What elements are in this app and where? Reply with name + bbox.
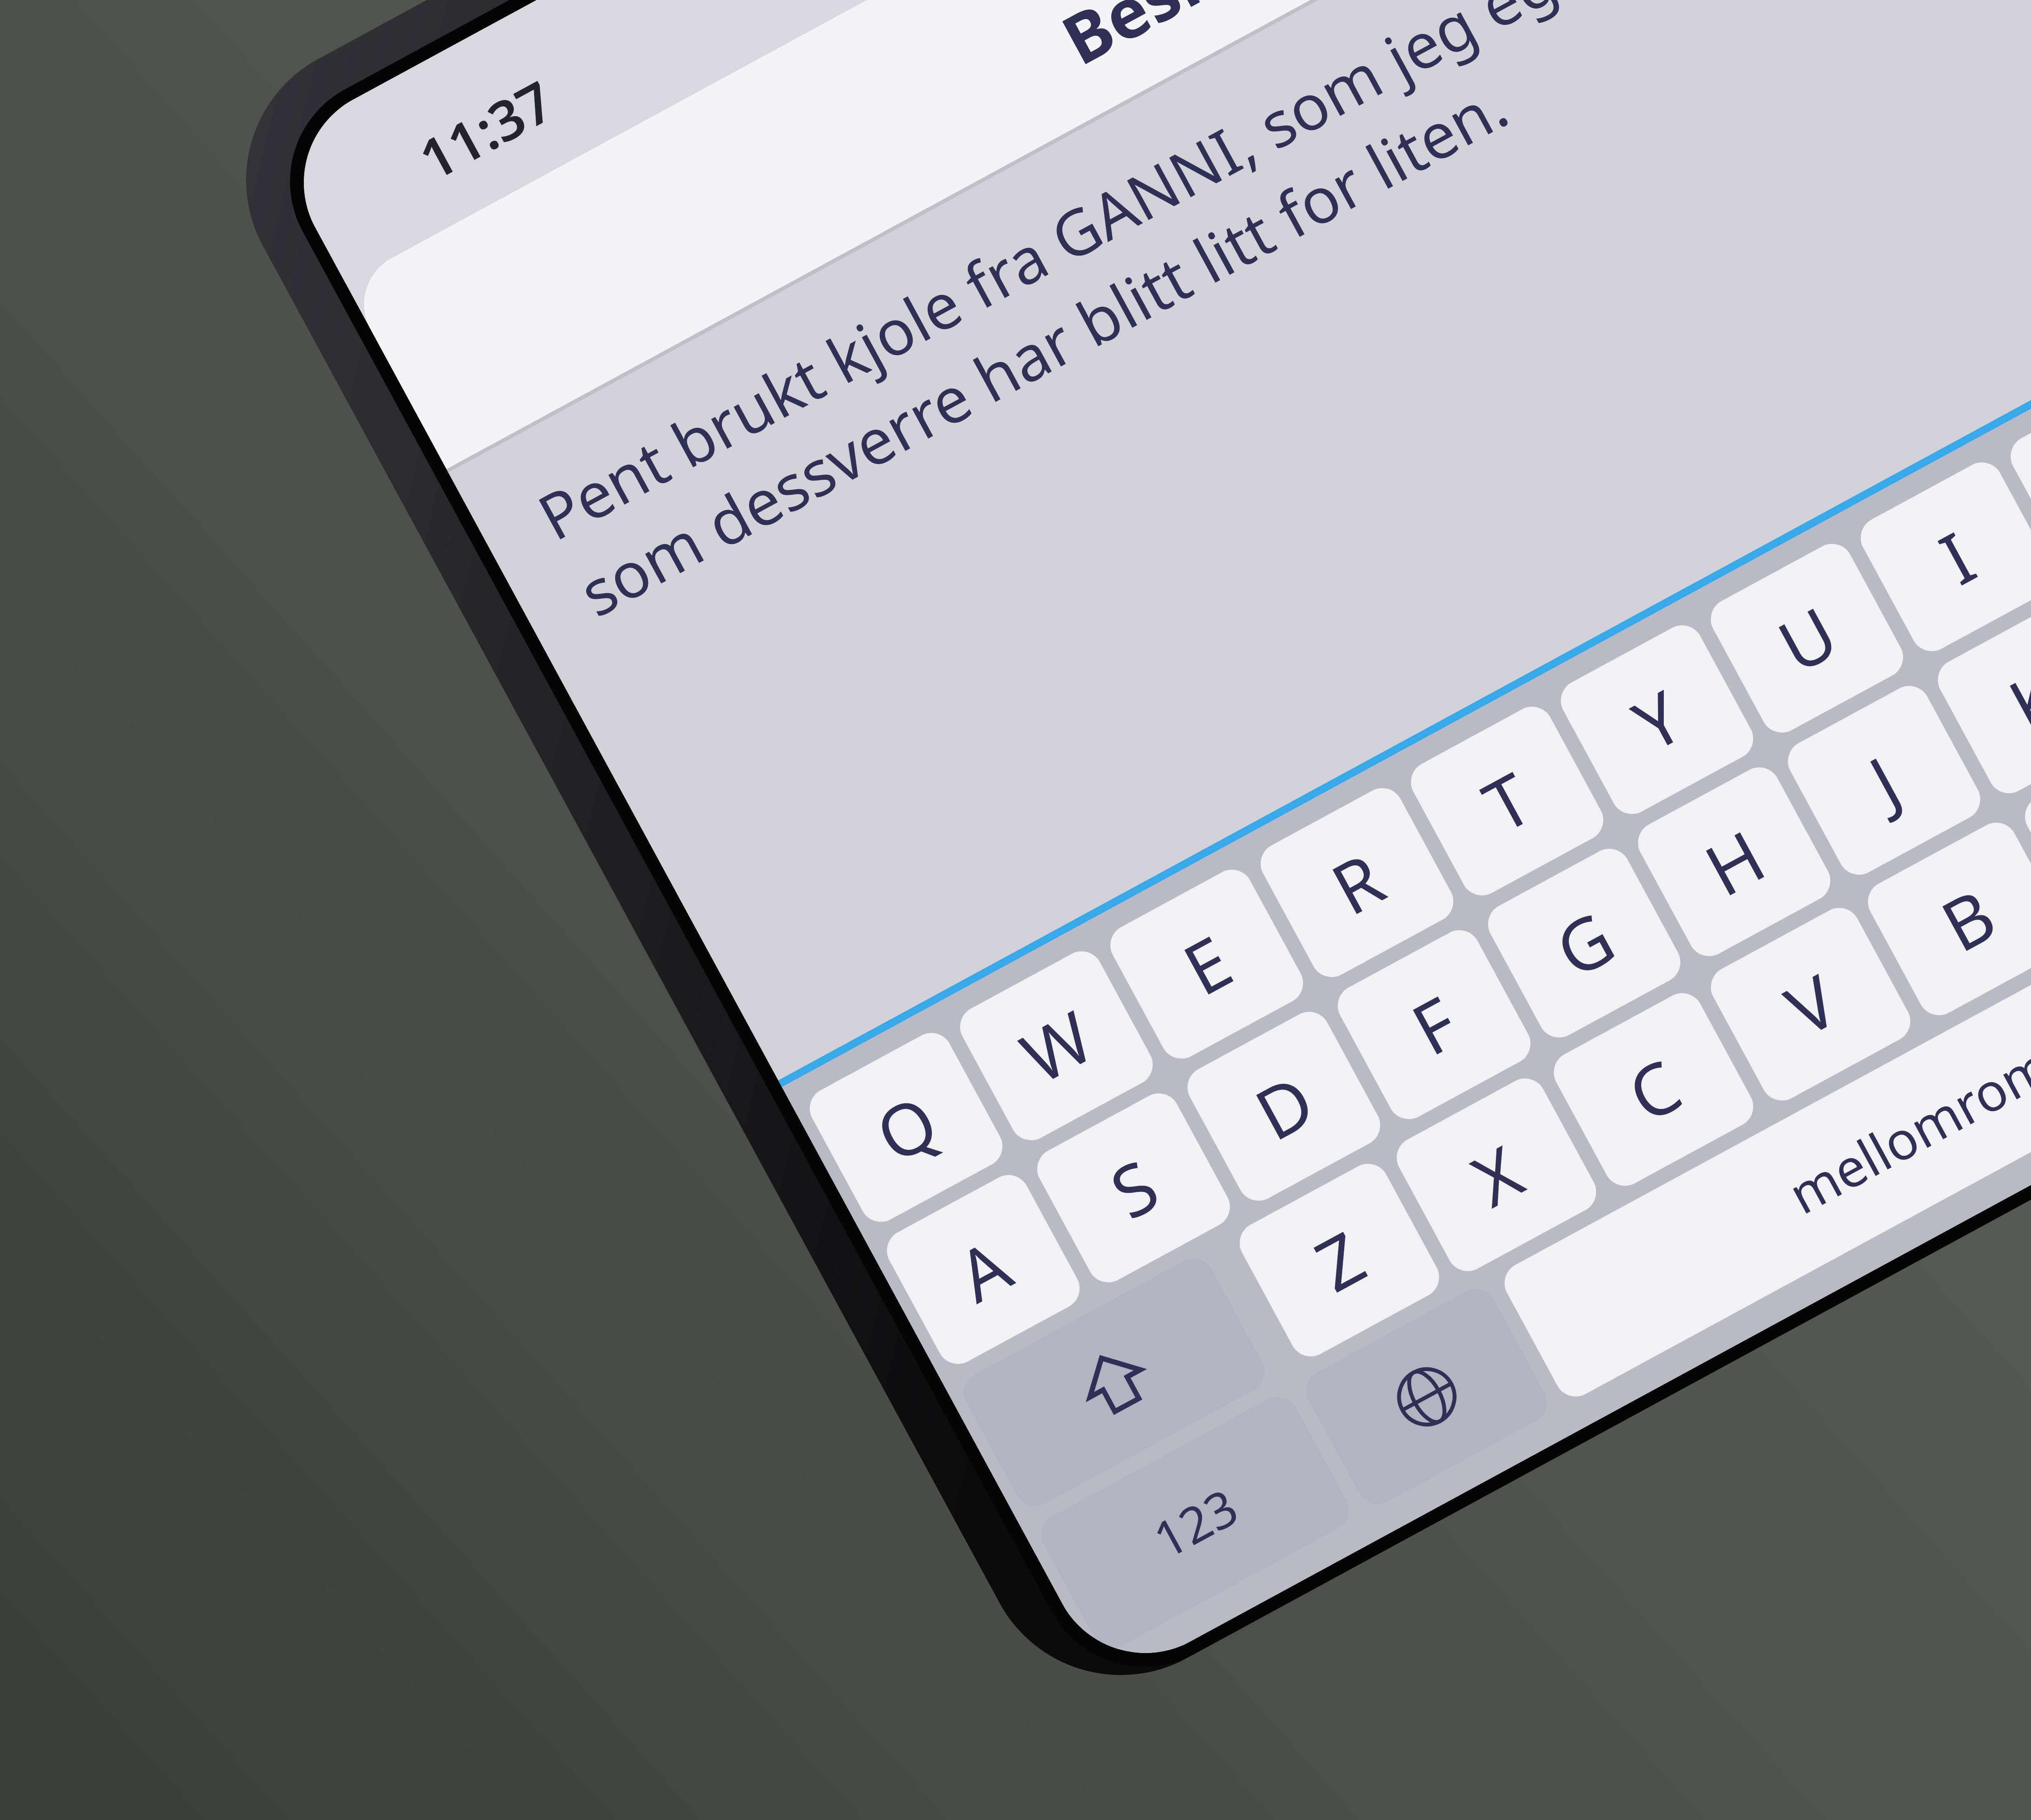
staticText: mellomrom [1776, 1029, 2031, 1229]
staticText: 123 [1141, 1472, 1249, 1573]
button[interactable]: C [1546, 986, 1761, 1193]
staticText: R [1314, 830, 1400, 936]
staticText: Pent brukt kjole fra GANNI, som jeg egen… [523, 0, 2031, 635]
staticText: G [1538, 888, 1630, 998]
button[interactable]: W [953, 944, 1160, 1148]
button[interactable]: F [1330, 923, 1538, 1127]
button[interactable]: Z [1232, 1156, 1447, 1364]
staticText: Beskrivelse [1046, 0, 1432, 85]
button[interactable]: 123 [1034, 1389, 1356, 1656]
button[interactable]: U [1703, 536, 1911, 740]
button[interactable]: I [1853, 455, 2031, 659]
button[interactable]: S [1030, 1086, 1237, 1290]
button[interactable]: Beskrivelse [372, 0, 2031, 469]
staticText: Y [1616, 667, 1698, 772]
staticText: T [1467, 749, 1548, 853]
staticText: Z [1298, 1208, 1380, 1312]
button[interactable]: T [1403, 699, 1611, 903]
staticText: V [1769, 951, 1853, 1057]
button[interactable]: mellomrom [1497, 854, 2031, 1404]
button[interactable]: K [1930, 597, 2031, 801]
staticText: I [1923, 509, 1991, 605]
staticText: J [1852, 733, 1916, 827]
staticText: X [1455, 1122, 1538, 1227]
staticText: D [1238, 1051, 1330, 1161]
button[interactable]: H [1631, 760, 1838, 964]
staticText: C [1611, 1036, 1697, 1143]
staticText: E [1166, 912, 1247, 1016]
button[interactable]: G [1481, 841, 1688, 1045]
staticText: S [1094, 1136, 1174, 1240]
staticText: 11:37 [406, 63, 566, 196]
button[interactable]: J [1780, 678, 1988, 882]
staticText: F [1395, 973, 1473, 1076]
button[interactable]: Pent brukt kjole fra GANNI, som jeg egen… [448, 0, 2031, 1080]
staticText: U [1761, 583, 1853, 693]
button[interactable]: O [2003, 374, 2031, 577]
button[interactable]: V [1703, 900, 1918, 1108]
button[interactable]: R [1253, 781, 1461, 984]
button[interactable]: Y [1553, 618, 1761, 821]
button[interactable]: D [1180, 1004, 1388, 1208]
staticText: K [1992, 646, 2031, 752]
staticText: W [1004, 988, 1109, 1104]
button[interactable]: N [2018, 730, 2031, 937]
button[interactable]: B [1860, 815, 2031, 1023]
staticText: Q [859, 1072, 954, 1183]
button[interactable]: Q [802, 1025, 1010, 1229]
staticText: H [1688, 807, 1780, 917]
button[interactable]: A [879, 1168, 1087, 1371]
button[interactable]: E [1103, 862, 1311, 1066]
button[interactable]: X [1389, 1071, 1604, 1279]
staticText: B [1924, 865, 2011, 972]
button[interactable]: Shift [957, 1251, 1272, 1513]
staticText: A [940, 1216, 1027, 1323]
button[interactable]: Change keyboard [1299, 1282, 1554, 1512]
